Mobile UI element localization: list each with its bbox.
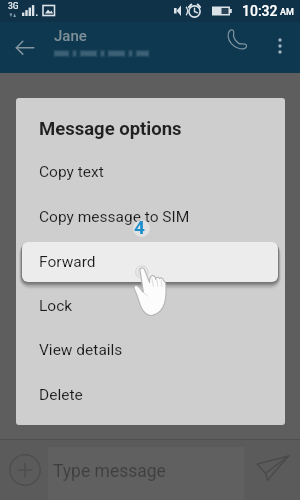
staticText: View details <box>39 341 123 359</box>
staticText: 3G <box>8 1 19 11</box>
button[interactable]: View details <box>16 328 285 372</box>
staticText: Lock <box>39 297 73 315</box>
staticText: Delete <box>39 386 83 404</box>
staticText: Forward <box>39 253 96 271</box>
button[interactable]: Copy message to SIM <box>16 195 285 239</box>
button[interactable]: Copy text <box>16 150 285 194</box>
staticText: 10:32 <box>242 3 278 19</box>
button[interactable]: More options <box>264 30 296 62</box>
button[interactable]: Back <box>9 31 41 63</box>
button[interactable]: Delete <box>16 373 285 417</box>
staticText: Jane <box>54 27 87 45</box>
button[interactable]: Call <box>222 24 254 56</box>
staticText: AM <box>280 7 294 18</box>
staticText: Forward <box>39 252 96 270</box>
button[interactable]: Forward <box>22 242 278 282</box>
staticText: 4 <box>134 216 145 238</box>
staticText: Type message <box>53 461 166 482</box>
button[interactable]: Add attachment <box>7 452 43 488</box>
staticText: Copy message to SIM <box>39 208 190 226</box>
staticText: Message options <box>39 118 182 140</box>
staticText: Copy text <box>39 163 104 181</box>
button[interactable]: Lock <box>16 284 285 328</box>
button[interactable]: Forward <box>16 239 285 283</box>
button[interactable]: Send <box>252 451 292 491</box>
